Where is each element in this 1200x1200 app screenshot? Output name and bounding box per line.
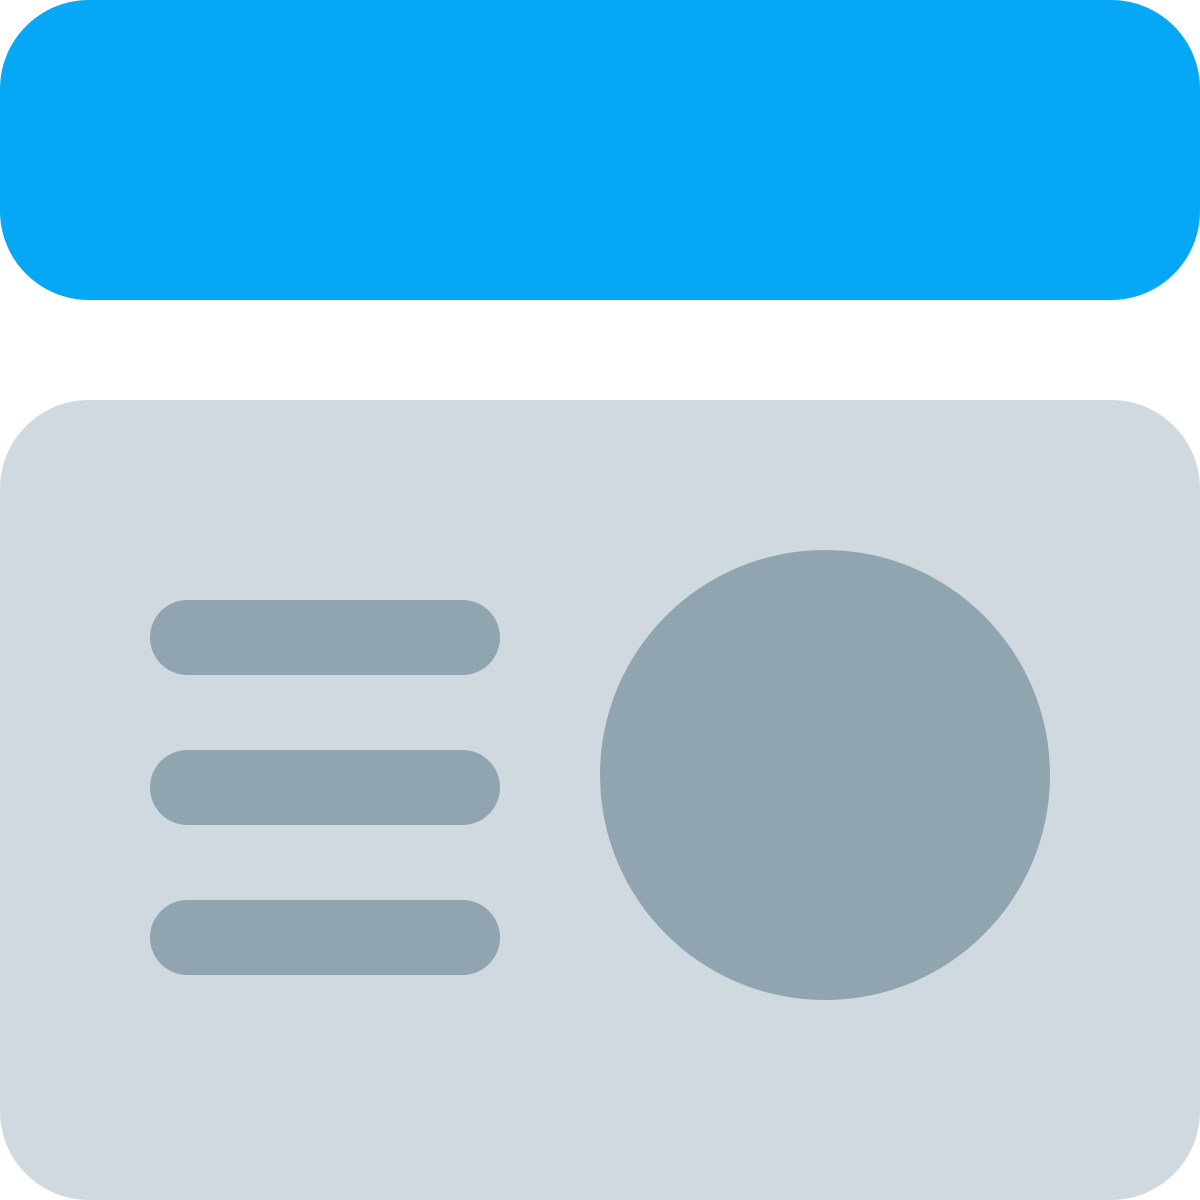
- button[interactable]: Banner: [0, 0, 1200, 300]
- button[interactable]: Membership card: [0, 400, 1200, 1200]
